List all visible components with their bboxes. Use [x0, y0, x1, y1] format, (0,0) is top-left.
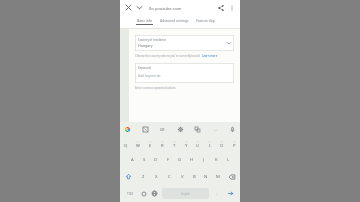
staticText: A [131, 157, 134, 163]
button[interactable]: Enter [222, 187, 239, 200]
staticText: 5 [174, 140, 176, 143]
button[interactable]: K [210, 152, 222, 168]
staticText: llo.youtube.com [149, 5, 215, 11]
button[interactable]: Stickers [140, 124, 151, 135]
button[interactable]: B [188, 168, 200, 185]
button[interactable]: Z [137, 168, 150, 185]
staticText: J [203, 157, 205, 163]
staticText: 0 [234, 140, 236, 143]
button[interactable]: D [150, 152, 162, 168]
staticText: Hungary [138, 43, 153, 48]
staticText: H [190, 157, 194, 163]
staticText: Advanced settings [160, 18, 189, 22]
button[interactable]: Change language [149, 187, 160, 200]
button[interactable]: Google Search [122, 124, 133, 135]
staticText: W [136, 143, 140, 149]
button[interactable]: F [162, 152, 174, 168]
staticText: Choose the country where you're currentl… [135, 54, 201, 58]
staticText: Basic info [137, 18, 152, 22]
staticText: Country of residence [138, 38, 167, 42]
staticText: Keywords [138, 66, 152, 70]
button[interactable]: Basic info [136, 18, 153, 25]
button[interactable]: 4 [156, 136, 168, 152]
button[interactable]: X [150, 168, 163, 185]
button[interactable]: Emoji [138, 187, 149, 200]
staticText: G [178, 157, 182, 163]
staticText: B [193, 174, 196, 180]
button[interactable]: 3 [144, 136, 156, 152]
button[interactable]: Voice input [227, 124, 238, 135]
staticText: C [168, 174, 171, 180]
button[interactable]: 9 [216, 136, 228, 152]
button[interactable]: N [200, 168, 212, 185]
staticText: . [216, 191, 217, 196]
button[interactable]: More [210, 124, 221, 135]
button[interactable]: English [162, 188, 209, 199]
button[interactable]: Expand [134, 2, 145, 13]
button[interactable]: Close [123, 2, 134, 13]
button[interactable]: Country of residence [135, 35, 234, 51]
staticText: Y [185, 143, 188, 149]
button[interactable]: Settings [175, 124, 186, 135]
button[interactable]: Backspace [224, 168, 240, 185]
staticText: N [204, 174, 208, 180]
staticText: 9 [221, 140, 223, 143]
staticText: K [215, 157, 218, 163]
staticText: Q [124, 143, 128, 149]
staticText: 1 [125, 140, 127, 143]
button[interactable]: H [186, 152, 198, 168]
staticText: L [227, 157, 230, 163]
staticText: S [143, 157, 146, 163]
button[interactable]: M [212, 168, 224, 185]
staticText: U [196, 143, 200, 149]
button[interactable]: 0 [228, 136, 240, 152]
button[interactable]: ?123 [121, 187, 138, 200]
staticText: 4 [162, 140, 164, 143]
button[interactable]: V [176, 168, 188, 185]
button[interactable]: L [222, 152, 234, 168]
staticText: O [220, 143, 224, 149]
button[interactable]: A [126, 152, 138, 168]
staticText: Feature eligi [196, 18, 216, 22]
staticText: 6 [186, 140, 188, 143]
staticText: Enter comma separated values [135, 86, 176, 90]
staticText: ?123 [127, 192, 133, 196]
button[interactable]: Share [215, 2, 226, 13]
button[interactable]: Translate [192, 124, 203, 135]
staticText: E [149, 143, 152, 149]
staticText: ... [214, 127, 218, 132]
staticText: X [155, 174, 158, 180]
button[interactable]: Learn more [202, 54, 218, 58]
button[interactable]: More options [226, 2, 237, 13]
staticText: 8 [209, 140, 211, 143]
staticText: 3 [150, 140, 152, 143]
staticText: V [181, 174, 184, 180]
button[interactable]: J [198, 152, 210, 168]
staticText: 2 [137, 140, 139, 143]
staticText: GIF [160, 128, 165, 132]
button[interactable]: G [174, 152, 186, 168]
button[interactable]: 5 [168, 136, 180, 152]
staticText: Z [142, 174, 145, 180]
button[interactable]: Advanced settings [160, 18, 189, 25]
button[interactable]: 2 [132, 136, 144, 152]
staticText: I [209, 143, 211, 149]
button[interactable]: Keywords [135, 63, 234, 83]
button[interactable]: 1 [120, 136, 132, 152]
button[interactable]: Shift [120, 168, 137, 185]
button[interactable]: Feature eligi [196, 18, 216, 25]
staticText: T [173, 143, 176, 149]
button[interactable]: C [163, 168, 176, 185]
staticText: Add keywords [138, 73, 161, 78]
button[interactable]: 6 [180, 136, 192, 152]
staticText: F [167, 157, 170, 163]
button[interactable]: S [138, 152, 150, 168]
staticText: M [216, 174, 220, 180]
staticText: D [154, 157, 158, 163]
staticText: R [161, 143, 164, 149]
button[interactable]: GIF [157, 124, 168, 135]
button[interactable]: 7 [192, 136, 204, 152]
staticText: P [233, 143, 236, 149]
button[interactable]: 8 [204, 136, 216, 152]
